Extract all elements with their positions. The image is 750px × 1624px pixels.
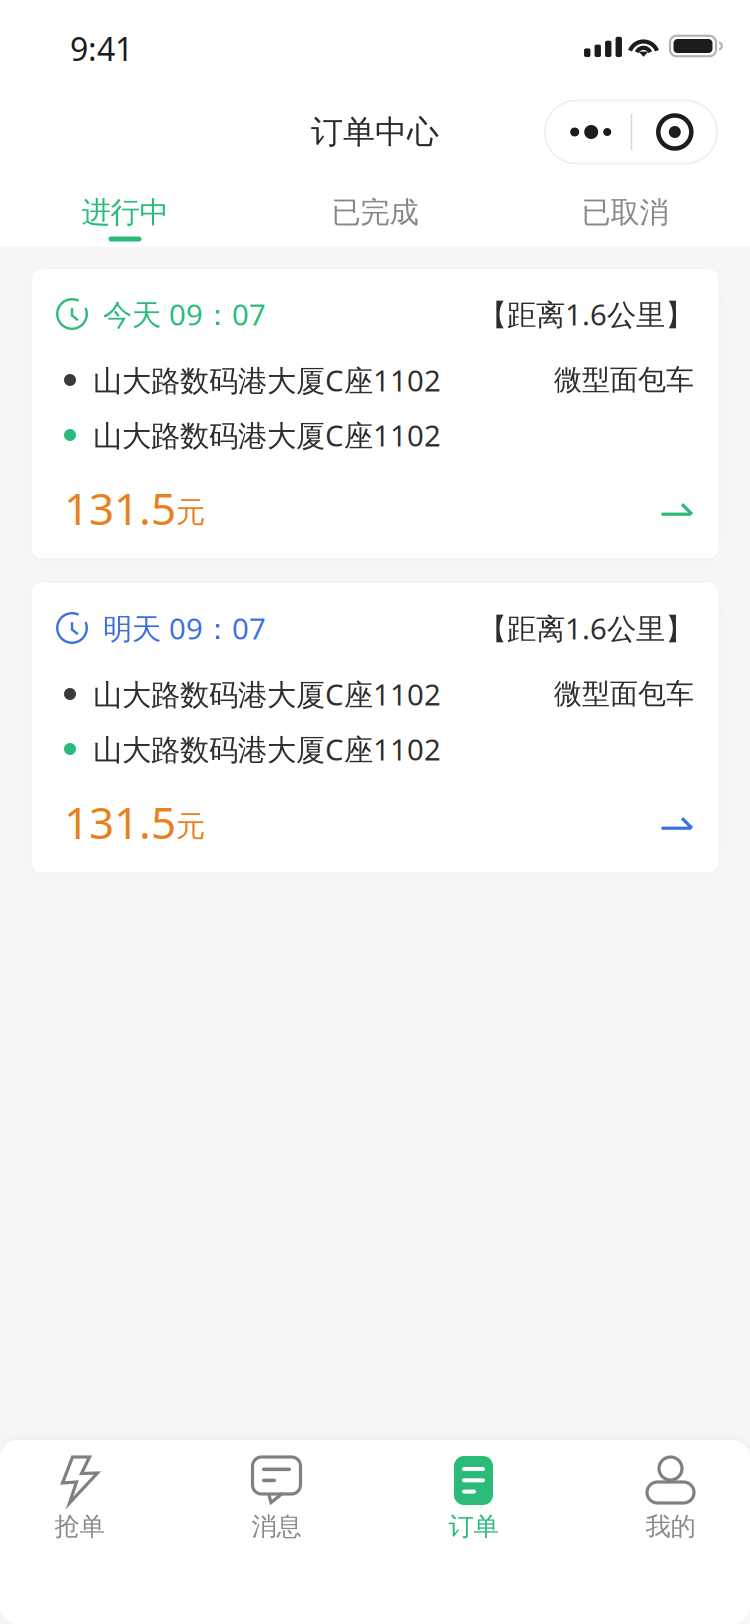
staticText: 元: [176, 808, 205, 844]
button[interactable]: 已取消: [500, 172, 750, 247]
button[interactable]: 我的: [572, 1451, 750, 1547]
button[interactable]: 明天 09：07: [32, 583, 718, 872]
staticText: 抢单: [54, 1511, 104, 1542]
button[interactable]: 进行中: [0, 172, 250, 247]
staticText: 微型面包车: [554, 363, 694, 397]
button[interactable]: 订单: [375, 1451, 572, 1547]
button[interactable]: 今天 09：07: [32, 269, 718, 558]
button[interactable]: More: [545, 100, 631, 163]
button[interactable]: 消息: [178, 1451, 375, 1547]
staticText: 山大路数码港大厦C座1102: [93, 674, 441, 713]
staticText: 【距离1.6公里】: [478, 294, 694, 333]
staticText: 订单: [448, 1511, 498, 1542]
staticText: 已完成: [331, 194, 418, 230]
staticText: 131.5: [64, 793, 176, 851]
staticText: 我的: [645, 1511, 695, 1542]
staticText: 订单中心: [311, 112, 439, 152]
staticText: 已取消: [581, 194, 668, 230]
staticText: 山大路数码港大厦C座1102: [93, 360, 441, 399]
staticText: 今天 09：07: [103, 294, 266, 333]
staticText: 131.5: [64, 479, 176, 537]
staticText: 9:41: [70, 27, 133, 70]
staticText: 消息: [251, 1511, 301, 1542]
button[interactable]: 已完成: [250, 172, 500, 247]
staticText: 微型面包车: [554, 677, 694, 711]
staticText: 进行中: [81, 194, 168, 230]
staticText: 元: [176, 494, 205, 530]
staticText: 明天 09：07: [103, 608, 266, 647]
staticText: 山大路数码港大厦C座1102: [93, 729, 441, 768]
staticText: 【距离1.6公里】: [478, 608, 694, 647]
staticText: 山大路数码港大厦C座1102: [93, 415, 441, 454]
button[interactable]: Close: [632, 100, 717, 163]
button[interactable]: 抢单: [0, 1451, 178, 1547]
